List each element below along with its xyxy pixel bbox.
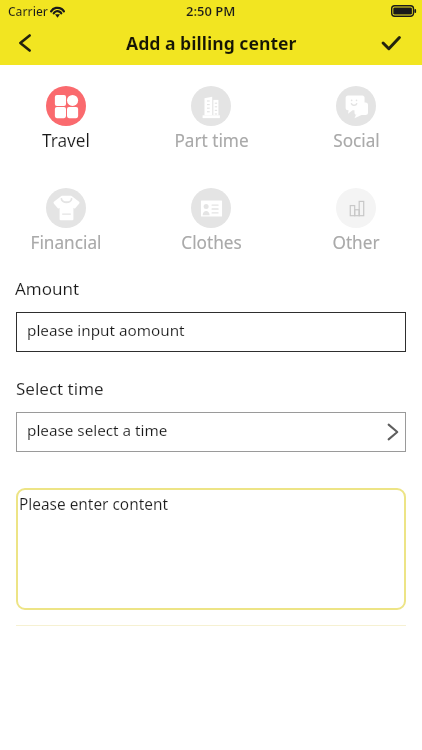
button[interactable]: Confirm	[369, 21, 413, 65]
staticText: please input aomount	[27, 320, 185, 341]
staticText: Financial	[30, 231, 102, 254]
button[interactable]: please input aomount	[16, 312, 406, 352]
staticText: Clothes	[181, 231, 242, 254]
staticText: Travel	[42, 129, 90, 152]
staticText: Carrier	[8, 3, 48, 19]
button[interactable]: Back	[3, 21, 47, 65]
button[interactable]: Financial	[0, 188, 136, 254]
staticText: Amount	[15, 277, 80, 300]
staticText: Other	[332, 231, 380, 254]
staticText: Please enter content	[19, 494, 168, 515]
staticText: Add a billing center	[126, 31, 297, 55]
button[interactable]: Please enter content	[16, 488, 406, 610]
staticText: Part time	[174, 129, 249, 152]
staticText: 2:50 PM	[186, 2, 236, 20]
button[interactable]: Clothes	[141, 188, 281, 254]
button[interactable]: please select a time	[16, 412, 406, 452]
button[interactable]: Social	[286, 86, 422, 152]
button[interactable]: Other	[286, 188, 422, 254]
staticText: Social	[333, 129, 380, 152]
staticText: Select time	[16, 377, 104, 400]
button[interactable]: Travel	[0, 86, 136, 152]
button[interactable]: Part time	[141, 86, 281, 152]
staticText: please select a time	[27, 420, 168, 441]
